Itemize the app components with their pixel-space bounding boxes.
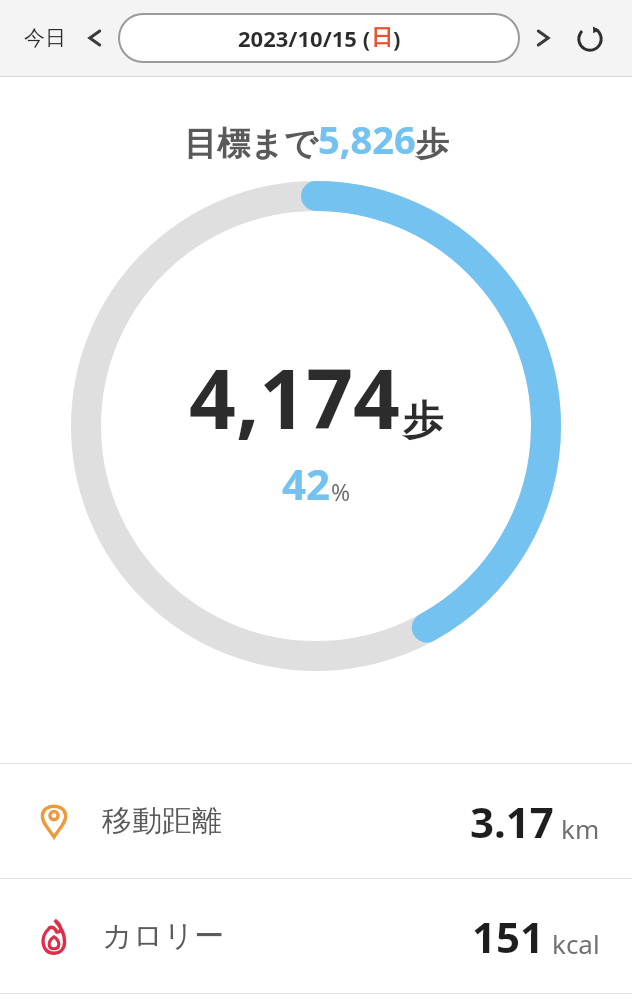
button[interactable]: 今日 [18,19,72,57]
staticText: 4,174 [189,341,400,453]
staticText: km [561,811,600,846]
button[interactable]: Next day [520,15,566,61]
staticText: 日 [371,24,393,52]
staticText: 目標まで [184,123,318,165]
staticText: 今日 [24,25,66,51]
button[interactable]: Refresh [566,14,614,62]
staticText: % [331,476,351,507]
staticText: 歩 [403,395,443,445]
staticText: ) [393,23,401,53]
staticText: kcal [552,926,600,961]
staticText: 移動距離 [102,802,222,840]
button[interactable]: Previous day [72,15,118,61]
staticText: 3.17 [470,793,554,850]
button[interactable]: 移動距離 [0,764,632,878]
button[interactable]: カロリー [0,879,632,993]
staticText: 歩 [416,123,449,165]
staticText: 42 [282,455,331,512]
staticText: 151 [472,908,545,965]
staticText: カロリー [102,917,225,955]
button[interactable]: 2023/10/15 ( [118,13,520,63]
staticText: 5,826 [318,113,416,165]
staticText: 2023/10/15 ( [238,23,371,53]
